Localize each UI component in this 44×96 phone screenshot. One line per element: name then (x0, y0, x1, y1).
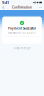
button[interactable]: Back (2, 5, 6, 10)
staticText: Confirmation (12, 6, 32, 9)
button[interactable]: View receipt (12, 46, 31, 50)
staticText: Payment Successful (8, 27, 36, 30)
staticText: 9:41 (2, 0, 9, 5)
staticText: Transaction ID 48201 (7, 31, 36, 34)
staticText: View receipt (13, 46, 30, 50)
button[interactable]: More options (38, 5, 42, 10)
